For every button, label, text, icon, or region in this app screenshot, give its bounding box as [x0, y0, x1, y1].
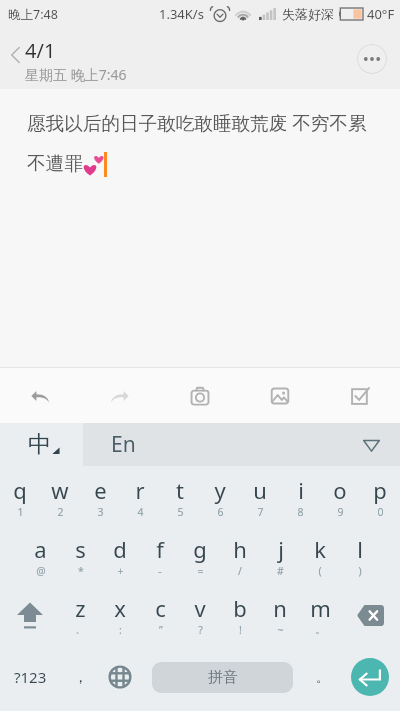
staticText: 4/1 — [25, 37, 56, 64]
staticText: v — [194, 593, 206, 623]
staticText: j — [278, 534, 284, 564]
button[interactable]: q — [0, 466, 40, 525]
staticText: - — [158, 564, 162, 578]
button[interactable]: 拼音 — [152, 662, 293, 693]
button[interactable]: En — [83, 423, 400, 466]
button[interactable]: Change input language — [100, 643, 140, 711]
staticText: 1.34K/s — [159, 5, 204, 23]
staticText: 愿我以后的日子敢吃敢睡敢荒废 不穷不累 — [27, 110, 367, 135]
staticText: 3 — [97, 505, 104, 519]
staticText: ， — [73, 668, 88, 687]
button[interactable]: x — [100, 584, 140, 643]
staticText: g — [193, 534, 207, 564]
staticText: * — [78, 564, 84, 578]
button[interactable]: d — [100, 525, 140, 584]
button[interactable]: s — [60, 525, 100, 584]
button[interactable]: e — [80, 466, 120, 525]
button[interactable]: i — [280, 466, 320, 525]
staticText: p — [373, 475, 387, 505]
staticText: h — [233, 534, 247, 564]
button[interactable]: m — [300, 584, 340, 643]
button[interactable]: o — [320, 466, 360, 525]
staticText: x — [114, 593, 126, 623]
button[interactable]: l — [340, 525, 380, 584]
staticText: 7 — [257, 505, 264, 519]
staticText: ! — [239, 623, 242, 637]
button[interactable]: g — [180, 525, 220, 584]
button[interactable]: Checklist — [320, 368, 400, 423]
staticText: t — [176, 475, 184, 505]
button[interactable]: h — [220, 525, 260, 584]
staticText: 星期五 晚上7:46 — [25, 65, 127, 84]
staticText: w — [51, 475, 69, 505]
button[interactable]: r — [120, 466, 160, 525]
staticText: ) — [358, 564, 362, 578]
staticText: + — [117, 564, 124, 578]
staticText: s — [75, 534, 86, 564]
staticText: 不遭罪 — [27, 152, 83, 175]
staticText: 晚上7:48 — [8, 6, 58, 23]
staticText: 8 — [297, 505, 304, 519]
staticText: ” — [159, 623, 163, 637]
staticText: i — [298, 475, 304, 505]
button[interactable]: w — [40, 466, 80, 525]
staticText: y — [214, 475, 226, 505]
staticText: r — [135, 475, 145, 505]
staticText: c — [155, 593, 166, 623]
button[interactable]: Backspace — [340, 584, 400, 643]
button[interactable]: Hide keyboard — [359, 433, 383, 457]
staticText: ?123 — [14, 667, 47, 687]
staticText: l — [357, 534, 363, 564]
staticText: = — [197, 564, 204, 578]
button[interactable]: c — [140, 584, 180, 643]
button[interactable]: n — [260, 584, 300, 643]
button[interactable]: b — [220, 584, 260, 643]
button[interactable]: a — [20, 525, 60, 584]
staticText: e — [94, 475, 107, 505]
button[interactable]: y — [200, 466, 240, 525]
staticText: ~ — [277, 623, 284, 637]
button[interactable]: Switch to Chinese — [0, 423, 83, 466]
staticText: a — [34, 534, 47, 564]
staticText: m — [310, 593, 331, 623]
staticText: 2 — [57, 505, 64, 519]
button[interactable]: Back — [2, 42, 28, 68]
staticText: b — [233, 593, 247, 623]
button[interactable]: 。 — [305, 643, 340, 711]
staticText: 。 — [316, 669, 329, 685]
staticText: 、 — [75, 623, 86, 636]
staticText: # — [277, 564, 284, 578]
button[interactable]: ， — [60, 643, 100, 711]
staticText: u — [253, 475, 267, 505]
button[interactable]: Enter — [351, 658, 389, 696]
staticText: z — [75, 593, 86, 623]
button[interactable]: Insert image — [240, 368, 320, 423]
button[interactable]: v — [180, 584, 220, 643]
button[interactable]: Camera — [160, 368, 240, 423]
button[interactable]: u — [240, 466, 280, 525]
button[interactable]: Redo — [80, 368, 160, 423]
button[interactable]: Shift — [0, 584, 60, 643]
button[interactable]: f — [140, 525, 180, 584]
staticText: En — [111, 430, 136, 459]
button[interactable]: p — [360, 466, 400, 525]
button[interactable]: ?123 — [0, 643, 60, 711]
staticText: f — [156, 534, 164, 564]
staticText: 40°F — [367, 5, 395, 23]
staticText: 失落好深 — [282, 6, 334, 22]
staticText: 拼音 — [208, 668, 238, 687]
staticText: 中 — [28, 430, 51, 459]
button[interactable]: z — [60, 584, 100, 643]
staticText: @ — [36, 564, 46, 578]
button[interactable]: More options — [357, 44, 387, 74]
button[interactable]: Undo — [0, 368, 80, 423]
staticText: 9 — [337, 505, 344, 519]
staticText: 4 — [137, 505, 144, 519]
button[interactable]: k — [300, 525, 340, 584]
button[interactable]: t — [160, 466, 200, 525]
staticText: 1 — [17, 505, 24, 519]
button[interactable]: j — [260, 525, 300, 584]
staticText: n — [273, 593, 287, 623]
staticText: ? — [198, 623, 203, 637]
staticText: d — [113, 534, 127, 564]
